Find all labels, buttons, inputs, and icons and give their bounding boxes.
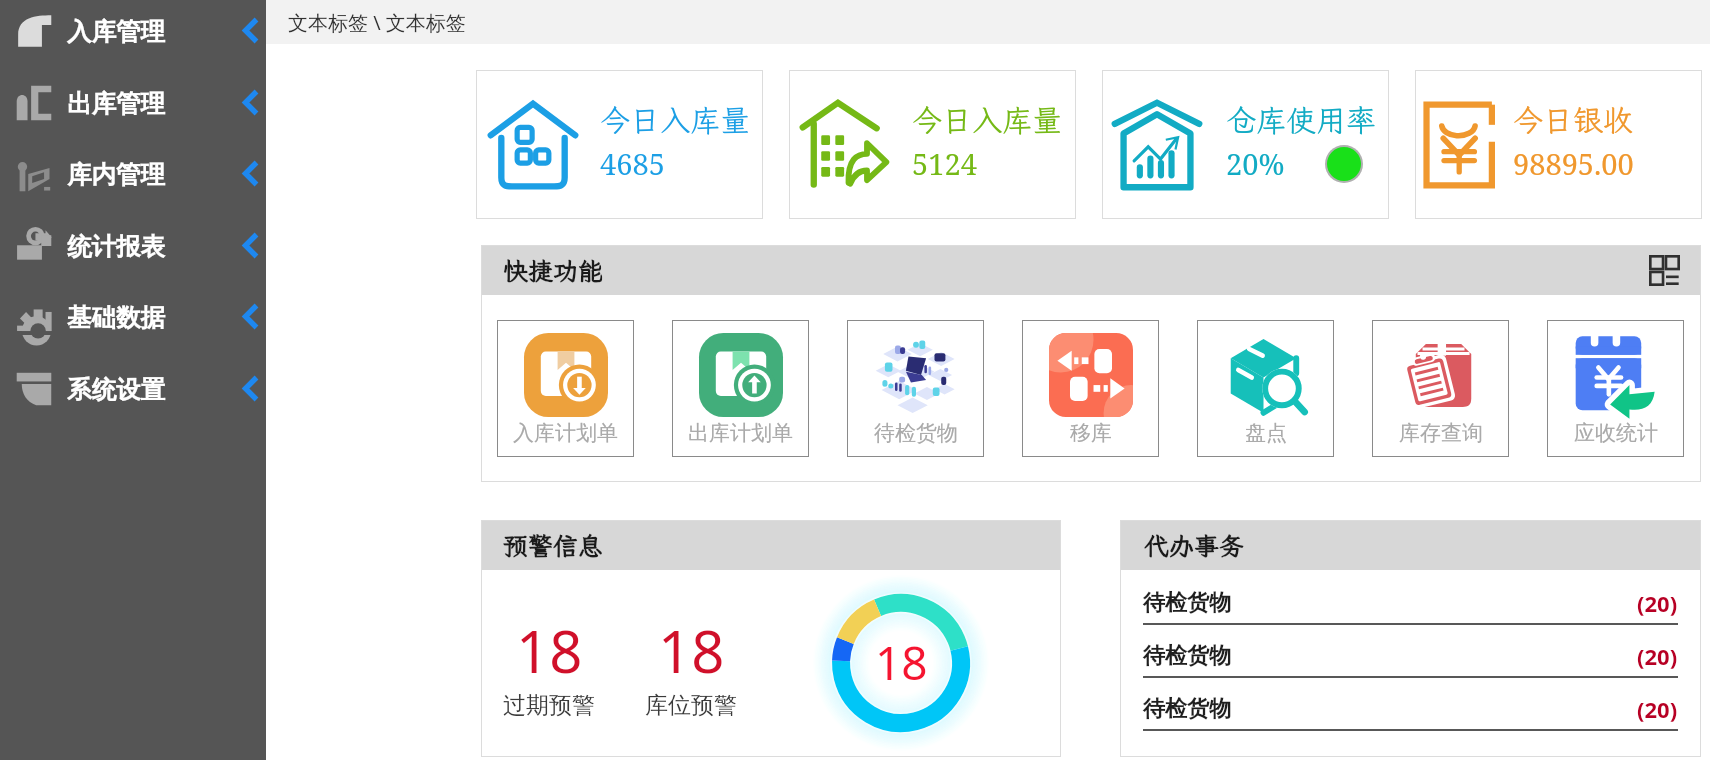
staticText: 出库管理 <box>67 88 165 119</box>
button[interactable]: 移库 <box>1022 320 1159 457</box>
staticText: (20) <box>1637 641 1678 671</box>
staticText: 待检货物 <box>1143 695 1231 723</box>
staticText: 库位预警 <box>645 691 737 720</box>
staticText: 4685 <box>600 144 665 183</box>
button[interactable]: 今日银收 <box>1415 70 1702 219</box>
button[interactable]: 待检货物 <box>847 320 984 457</box>
button[interactable]: 库存查询 <box>1372 320 1509 457</box>
staticText: 出库计划单 <box>688 420 793 446</box>
button[interactable]: 入库计划单 <box>497 320 634 457</box>
staticText: 18 <box>875 631 928 694</box>
staticText: 今日银收 <box>1513 100 1633 140</box>
staticText: 5124 <box>912 144 977 183</box>
staticText: 20% <box>1226 144 1285 183</box>
button[interactable]: 系统设置 <box>0 353 266 424</box>
button[interactable]: 库内管理 <box>0 138 266 209</box>
staticText: 18 <box>516 611 583 690</box>
button[interactable]: 待检货物 <box>1143 588 1678 625</box>
button[interactable]: 入库管理 <box>0 0 266 66</box>
button[interactable]: 出库计划单 <box>672 320 809 457</box>
staticText: 系统设置 <box>67 374 165 405</box>
staticText: 98895.00 <box>1513 144 1634 183</box>
staticText: 快捷功能 <box>503 254 604 287</box>
button[interactable]: 待检货物 <box>1143 694 1678 731</box>
staticText: 18 <box>658 611 725 690</box>
staticText: 统计报表 <box>67 231 165 262</box>
staticText: 入库管理 <box>67 16 165 47</box>
staticText: 今日入库量 <box>912 100 1062 140</box>
button[interactable]: 今日入库量 <box>476 70 763 219</box>
button[interactable]: 今日入库量 <box>789 70 1076 219</box>
staticText: 待检货物 <box>1143 589 1231 617</box>
staticText: 基础数据 <box>67 302 165 333</box>
staticText: 文本标签 \ 文本标签 <box>288 9 466 36</box>
staticText: 入库计划单 <box>513 420 618 446</box>
button[interactable]: 待检货物 <box>1143 641 1678 678</box>
staticText: 仓库使用率 <box>1226 100 1376 140</box>
staticText: 待检货物 <box>874 420 958 446</box>
staticText: (20) <box>1637 694 1678 724</box>
staticText: 盘点 <box>1245 420 1287 446</box>
staticText: 过期预警 <box>503 691 595 720</box>
button[interactable]: 仓库使用率 <box>1102 70 1389 219</box>
staticText: 预警信息 <box>503 529 604 562</box>
button[interactable]: 出库管理 <box>0 67 266 138</box>
staticText: 今日入库量 <box>600 100 750 140</box>
staticText: 应收统计 <box>1574 420 1658 446</box>
staticText: 库内管理 <box>67 159 165 190</box>
staticText: 库存查询 <box>1399 420 1483 446</box>
staticText: 代办事务 <box>1144 529 1245 562</box>
button[interactable]: 基础数据 <box>0 281 266 352</box>
staticText: 移库 <box>1070 420 1112 446</box>
staticText: (20) <box>1637 588 1678 618</box>
staticText: 待检货物 <box>1143 642 1231 670</box>
button[interactable]: 盘点 <box>1197 320 1334 457</box>
button[interactable]: 应收统计 <box>1547 320 1684 457</box>
button[interactable]: 统计报表 <box>0 210 266 281</box>
button[interactable]: More functions <box>1645 251 1683 289</box>
